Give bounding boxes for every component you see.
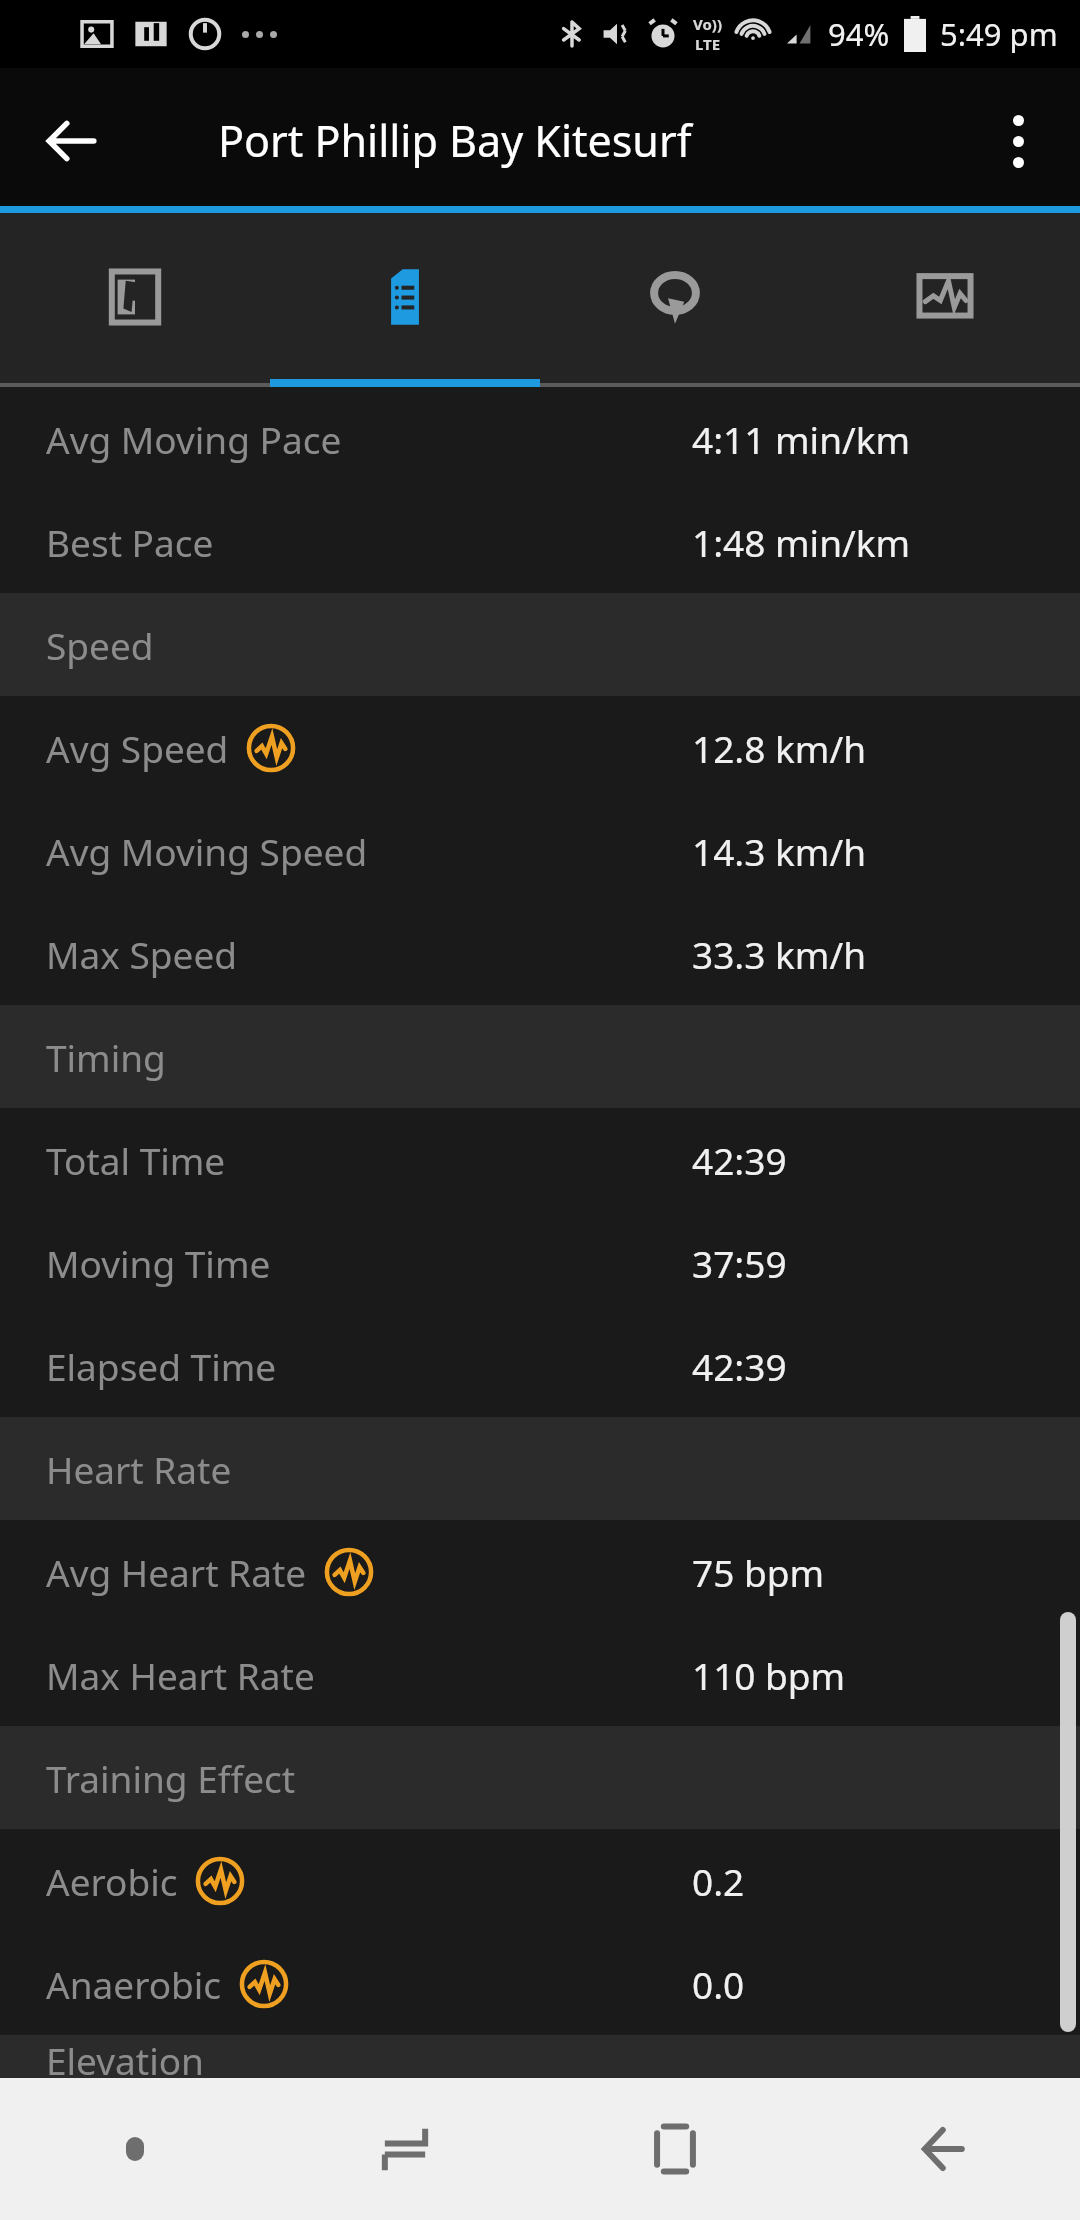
staticText: Elevation [46,2035,204,2078]
button[interactable]: Aerobic [0,1829,1080,1932]
staticText: 4:11 min/km [692,414,911,464]
button[interactable]: Speed [0,593,1080,696]
button[interactable]: Menu dot [0,2078,270,2220]
staticText: 110 bpm [692,1650,846,1700]
staticText: Avg Moving Pace [46,414,342,464]
staticText: 75 bpm [692,1547,825,1597]
button[interactable]: Avg Heart Rate [0,1520,1080,1623]
staticText: Heart Rate [46,1444,232,1494]
button[interactable]: Recents [270,2078,540,2220]
button[interactable]: Moving Time [0,1211,1080,1314]
button[interactable]: Elevation [0,2035,1080,2078]
button[interactable]: Timing [0,1005,1080,1108]
staticText: Max Speed [46,929,238,979]
button[interactable]: Home [540,2078,810,2220]
staticText: Training Effect [46,1753,296,1803]
staticText: Timing [46,1032,166,1082]
staticText: Aerobic [46,1856,178,1906]
staticText: Anaerobic [46,1959,222,2009]
staticText: Elapsed Time [46,1341,277,1391]
staticText: Moving Time [46,1238,271,1288]
staticText: Avg Moving Speed [46,826,368,876]
button[interactable]: More options [976,99,1060,183]
staticText: 0.2 [692,1856,745,1906]
staticText: 37:59 [692,1238,787,1288]
staticText: LTE [695,34,721,54]
staticText: 5:49 pm [940,13,1058,55]
button[interactable]: Details [270,213,540,380]
staticText: Max Heart Rate [46,1650,315,1700]
button[interactable]: Avg Speed [0,696,1080,799]
staticText: Port Phillip Bay Kitesurf [218,111,692,170]
staticText: Avg Speed [46,723,229,773]
staticText: 42:39 [692,1341,787,1391]
button[interactable]: Best Pace [0,490,1080,593]
button[interactable]: Total Time [0,1108,1080,1211]
staticText: Vo)) [693,14,722,34]
staticText: Total Time [46,1135,226,1185]
staticText: 33.3 km/h [692,929,867,979]
button[interactable]: Max Speed [0,902,1080,1005]
staticText: Speed [46,620,154,670]
button[interactable]: Heart Rate [0,1417,1080,1520]
button[interactable]: Avg Moving Pace [0,387,1080,490]
staticText: 94% [828,13,890,55]
button[interactable]: Anaerobic [0,1932,1080,2035]
button[interactable]: Max Heart Rate [0,1623,1080,1726]
staticText: 42:39 [692,1135,787,1185]
button[interactable]: Back [32,101,112,181]
staticText: 14.3 km/h [692,826,867,876]
button[interactable]: Laps [540,213,810,380]
button[interactable]: Charts [810,213,1080,380]
button[interactable]: Map [0,213,270,380]
button[interactable]: Back [810,2078,1080,2220]
staticText: 0.0 [692,1959,745,2009]
staticText: 1:48 min/km [692,517,911,567]
staticText: Best Pace [46,517,214,567]
staticText: 12.8 km/h [692,723,867,773]
button[interactable]: Elapsed Time [0,1314,1080,1417]
staticText: Avg Heart Rate [46,1547,307,1597]
button[interactable]: Training Effect [0,1726,1080,1829]
button[interactable]: Avg Moving Speed [0,799,1080,902]
